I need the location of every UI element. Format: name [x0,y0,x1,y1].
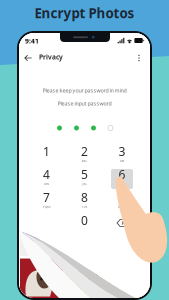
staticText: 8 [81,189,88,205]
staticText: 4 [43,166,50,182]
staticText: Encrypt Photos [34,4,134,22]
button[interactable]: 7 [35,192,57,212]
staticText: TUV [81,205,87,209]
staticText: 7 [43,189,50,205]
staticText: 6 [118,166,125,182]
button[interactable]: 9 [111,192,133,212]
staticText: Privacy [39,53,63,61]
button[interactable]: 2 [73,146,95,166]
button[interactable]: 0 [73,215,95,235]
button[interactable]: 8 [73,192,95,212]
staticText: GHI [44,182,49,186]
staticText: 9 [118,189,125,205]
staticText: Please input password [57,100,111,107]
staticText: 3 [118,143,125,159]
button[interactable]: Back [23,53,34,63]
staticText: 5 [81,166,88,182]
button[interactable]: 6 [111,169,133,189]
button[interactable]: Delete [111,213,133,233]
button[interactable]: 4 [35,169,57,189]
staticText: 9:41 [25,37,39,45]
button[interactable]: 1 [35,146,57,166]
staticText: 1 [43,143,50,159]
staticText: DEF [120,159,124,163]
button[interactable]: 3 [111,146,133,166]
button[interactable]: More options [138,55,140,61]
button[interactable]: 5 [73,169,95,189]
staticText: Please keep your password in mind [42,87,126,94]
staticText: 0 [81,212,88,228]
staticText: ABC [81,159,87,163]
staticText: JKL [82,182,86,186]
staticText: PQRS [43,205,50,209]
staticText: WXYZ [117,205,126,209]
staticText: 2 [81,143,88,159]
